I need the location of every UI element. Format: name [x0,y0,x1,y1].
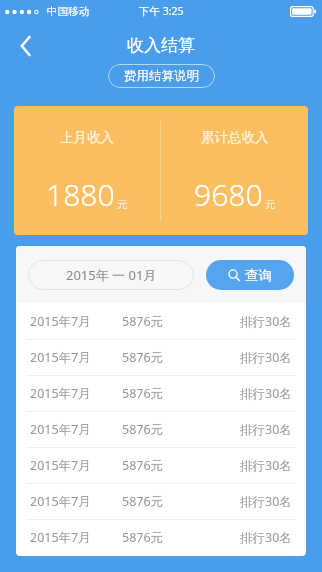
staticText: 2015年 一 01月 [66,266,157,284]
staticText: 排行30名 [240,457,292,474]
staticText: 收入结算 [127,35,195,56]
staticText: 2015年7月 [30,421,122,438]
staticText: 排行30名 [240,385,292,402]
staticText: 2015年7月 [30,493,122,510]
staticText: 元 [117,198,128,211]
staticText: 中国移动 [47,5,89,18]
button[interactable]: 2015年7月 [16,412,306,447]
staticText: 下午 3:25 [139,4,184,18]
button[interactable]: 2015年 一 01月 [28,260,194,290]
staticText: 5876元 [122,421,207,438]
button[interactable]: 查询 [206,260,294,290]
staticText: 排行30名 [240,529,292,546]
button[interactable]: 2015年7月 [16,303,306,339]
staticText: 5876元 [122,313,207,330]
button[interactable]: 2015年7月 [16,448,306,483]
staticText: 2015年7月 [30,349,122,366]
button[interactable]: 2015年7月 [16,484,306,519]
staticText: 5876元 [122,385,207,402]
staticText: 2015年7月 [30,529,122,546]
button[interactable]: Back [6,26,46,66]
button[interactable]: 费用结算说明 [108,64,215,88]
button[interactable]: 2015年7月 [16,376,306,411]
staticText: 排行30名 [240,493,292,510]
staticText: 上月收入 [60,129,114,146]
staticText: 排行30名 [240,349,292,366]
button[interactable]: 2015年7月 [16,340,306,375]
staticText: 查询 [245,267,272,284]
staticText: 2015年7月 [30,385,122,402]
staticText: 5876元 [122,493,207,510]
staticText: 1880 [46,174,115,215]
staticText: 2015年7月 [30,313,122,330]
staticText: 5876元 [122,457,207,474]
staticText: 5876元 [122,529,207,546]
staticText: 2015年7月 [30,457,122,474]
staticText: 9680 [194,174,263,215]
staticText: 元 [265,198,276,211]
staticText: 累计总收入 [201,129,269,146]
staticText: 排行30名 [240,421,292,438]
button[interactable]: 2015年7月 [16,520,306,555]
staticText: 排行30名 [240,313,292,330]
staticText: 5876元 [122,349,207,366]
staticText: 费用结算说明 [124,68,199,84]
